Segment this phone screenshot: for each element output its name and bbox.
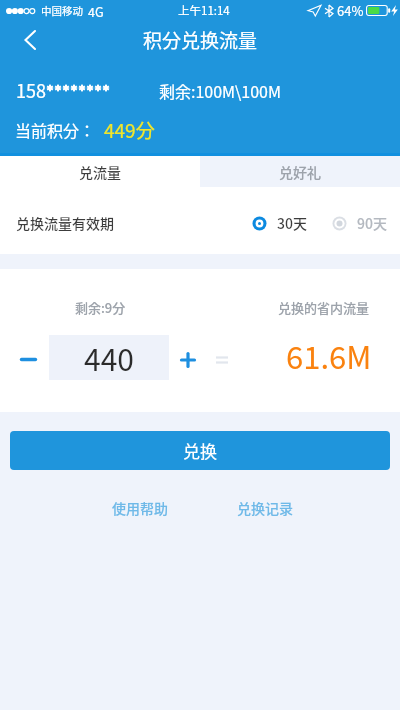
- staticText: 上午11:14: [178, 2, 230, 19]
- button[interactable]: 使用帮助: [112, 498, 168, 518]
- staticText: 440: [84, 336, 134, 379]
- button[interactable]: Increase: [172, 344, 203, 375]
- staticText: 兑换: [183, 438, 217, 463]
- staticText: 剩余:100M\100M: [159, 79, 281, 102]
- staticText: 4G: [88, 2, 104, 20]
- button[interactable]: Decrease: [13, 344, 44, 375]
- staticText: 30天: [277, 213, 307, 233]
- staticText: 64%: [337, 1, 364, 20]
- staticText: 90天: [357, 213, 387, 233]
- staticText: 兑换的省内流量: [278, 298, 370, 317]
- staticText: 61.6M: [286, 333, 372, 378]
- staticText: 中国移动: [41, 3, 83, 18]
- staticText: 兑好礼: [279, 162, 321, 182]
- button[interactable]: 兑换: [10, 431, 390, 470]
- button[interactable]: 440: [49, 335, 169, 380]
- button[interactable]: 兑流量: [0, 156, 200, 187]
- staticText: 当前积分：: [15, 118, 96, 141]
- button[interactable]: 兑换记录: [237, 498, 293, 518]
- staticText: 兑流量: [79, 162, 121, 182]
- button[interactable]: 兑好礼: [200, 156, 400, 187]
- staticText: 使用帮助: [112, 498, 168, 518]
- button[interactable]: 30天: [252, 213, 307, 233]
- staticText: 剩余:9分: [75, 298, 126, 317]
- staticText: 449分: [104, 116, 155, 144]
- staticText: 兑换流量有效期: [16, 213, 114, 233]
- staticText: 兑换记录: [237, 498, 293, 518]
- button[interactable]: Back: [14, 24, 46, 56]
- staticText: 积分兑换流量: [143, 26, 258, 54]
- button[interactable]: 90天: [332, 213, 387, 233]
- staticText: 158: [16, 77, 46, 103]
